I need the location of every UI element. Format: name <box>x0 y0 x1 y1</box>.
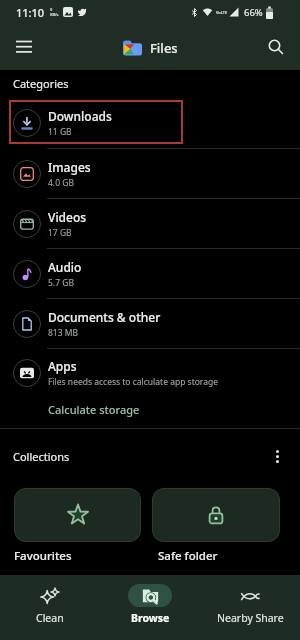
staticText: 813 MB <box>48 327 79 339</box>
staticText: 11:10 <box>16 5 45 20</box>
staticText: Clean <box>36 611 64 625</box>
staticText: Calculate storage <box>48 402 140 417</box>
button[interactable] <box>262 441 292 471</box>
button[interactable]: Videos <box>0 199 300 248</box>
staticText: Nearby Share <box>217 611 284 625</box>
button[interactable] <box>8 31 40 63</box>
staticText: Files <box>150 39 178 57</box>
staticText: 4.0 GB <box>48 177 74 189</box>
button[interactable] <box>152 488 280 542</box>
staticText: 0 KB/s <box>50 7 59 17</box>
staticText: Videos <box>48 209 87 225</box>
button[interactable]: Browse <box>100 575 200 640</box>
button[interactable]: Clean <box>0 575 100 640</box>
staticText: Browse <box>131 611 170 625</box>
button[interactable] <box>14 488 141 542</box>
staticText: Audio <box>48 259 82 275</box>
staticText: Favourites <box>14 548 147 564</box>
staticText: Documents & other <box>48 309 161 325</box>
staticText: Collections <box>13 449 70 464</box>
staticText: Files needs access to calculate app stor… <box>48 376 218 388</box>
button[interactable]: Calculate storage <box>0 397 300 428</box>
staticText: Downloads <box>48 108 112 124</box>
staticText: 66% <box>244 6 263 19</box>
button[interactable]: Downloads <box>0 98 300 148</box>
button[interactable]: Documents & other <box>0 299 300 348</box>
staticText: Safe folder <box>158 548 280 564</box>
button[interactable]: Apps <box>0 349 300 397</box>
staticText: 11 GB <box>48 126 72 138</box>
staticText: 17 GB <box>48 227 72 239</box>
staticText: VoLTE <box>216 10 228 15</box>
staticText: 5.7 GB <box>48 277 74 289</box>
staticText: Apps <box>48 358 77 374</box>
staticText: Images <box>48 159 91 175</box>
button[interactable]: Images <box>0 149 300 198</box>
button[interactable]: Audio <box>0 249 300 298</box>
staticText: Categories <box>13 76 69 91</box>
button[interactable] <box>260 31 292 63</box>
button[interactable]: Nearby Share <box>200 575 300 640</box>
